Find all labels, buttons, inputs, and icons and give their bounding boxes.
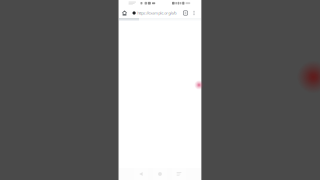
button[interactable]: Home [153,168,167,180]
staticText: https://example.org/a/b [137,10,176,16]
button[interactable]: Tabs [181,8,190,18]
button[interactable]: Home [119,8,129,18]
button[interactable]: Back [134,168,148,180]
button[interactable]: https://example.org/a/b [132,8,182,18]
button[interactable]: Recent apps [172,168,186,180]
button[interactable]: More options [190,8,198,18]
